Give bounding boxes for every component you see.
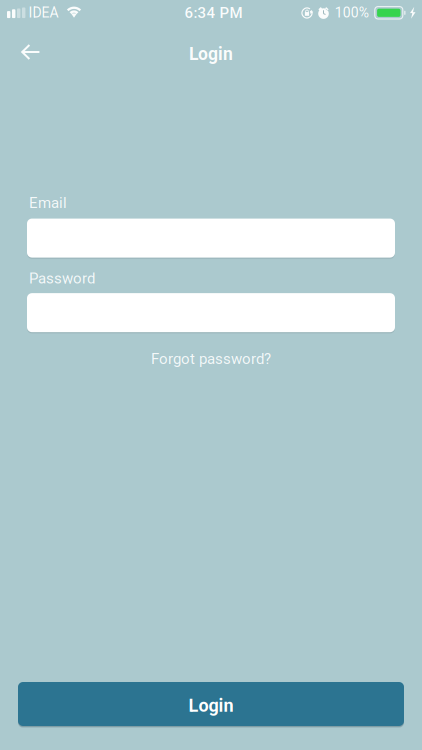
- staticText: Password: [29, 270, 95, 287]
- staticText: Login: [188, 695, 233, 716]
- staticText: 100%: [335, 5, 369, 21]
- button[interactable]: Password: [27, 293, 395, 332]
- button[interactable]: Forgot password?: [141, 345, 281, 373]
- button[interactable]: Back: [0, 35, 55, 71]
- staticText: IDEA: [28, 5, 58, 21]
- staticText: Email: [29, 194, 67, 212]
- staticText: Forgot password?: [151, 350, 271, 368]
- button[interactable]: Email: [27, 219, 395, 258]
- staticText: 6:34 PM: [184, 4, 242, 22]
- button[interactable]: Login: [18, 682, 404, 726]
- staticText: Login: [189, 44, 233, 64]
